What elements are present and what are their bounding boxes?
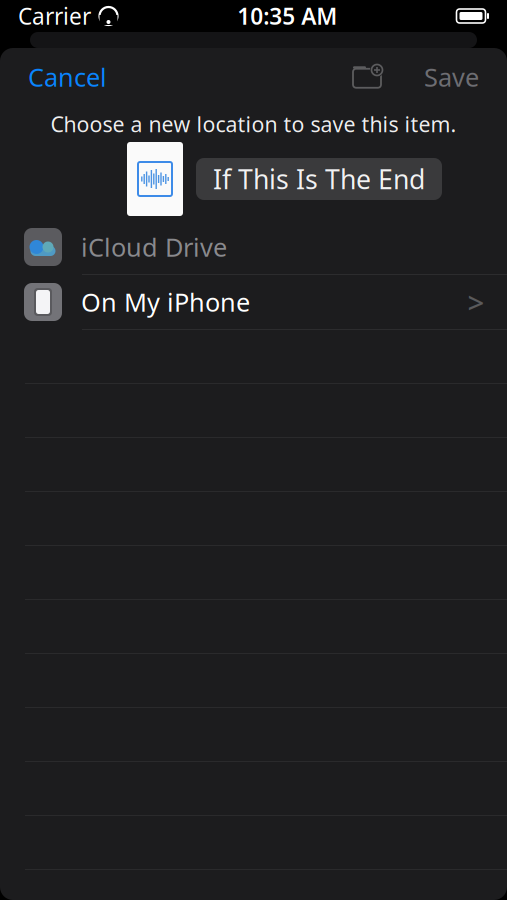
staticText: > [467, 282, 484, 321]
button[interactable]: Cancel [16, 50, 119, 104]
staticText: Cancel [28, 60, 107, 94]
button[interactable]: Save [412, 50, 491, 104]
button[interactable]: iCloud Drive [0, 220, 507, 274]
staticText: If This Is The End [213, 161, 425, 197]
staticText: 10:35 AM [237, 1, 337, 31]
button[interactable]: New Folder [342, 55, 392, 99]
staticText: Save [424, 60, 479, 94]
staticText: iCloud Drive [81, 230, 227, 264]
staticText: On My iPhone [81, 285, 250, 319]
button[interactable]: On My iPhone [0, 275, 507, 329]
staticText: Choose a new location to save this item. [50, 110, 456, 138]
staticText: Carrier [18, 1, 91, 31]
